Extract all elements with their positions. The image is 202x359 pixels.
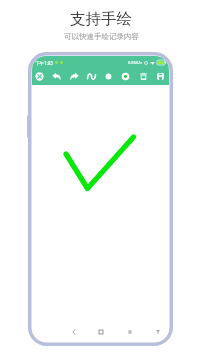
button[interactable]: Home [94, 325, 108, 339]
button[interactable]: Brush [85, 70, 98, 83]
button[interactable]: Colour [119, 70, 132, 83]
button[interactable]: Stroke width [102, 70, 115, 83]
button[interactable]: Save [154, 70, 167, 83]
button[interactable]: Hide keyboard [151, 325, 165, 339]
button[interactable]: Close [33, 70, 46, 83]
button[interactable]: Recent apps [123, 325, 137, 339]
staticText: 可以快速手绘记录内容 [64, 32, 139, 41]
button[interactable]: Back [67, 325, 81, 339]
button[interactable]: Redo [68, 70, 81, 83]
staticText: 支持手绘 [70, 9, 132, 29]
staticText: 0.86K/s [128, 60, 142, 65]
button[interactable]: Undo [50, 70, 63, 83]
staticText: 下午1:03 [35, 60, 53, 66]
button[interactable]: Delete [137, 70, 150, 83]
